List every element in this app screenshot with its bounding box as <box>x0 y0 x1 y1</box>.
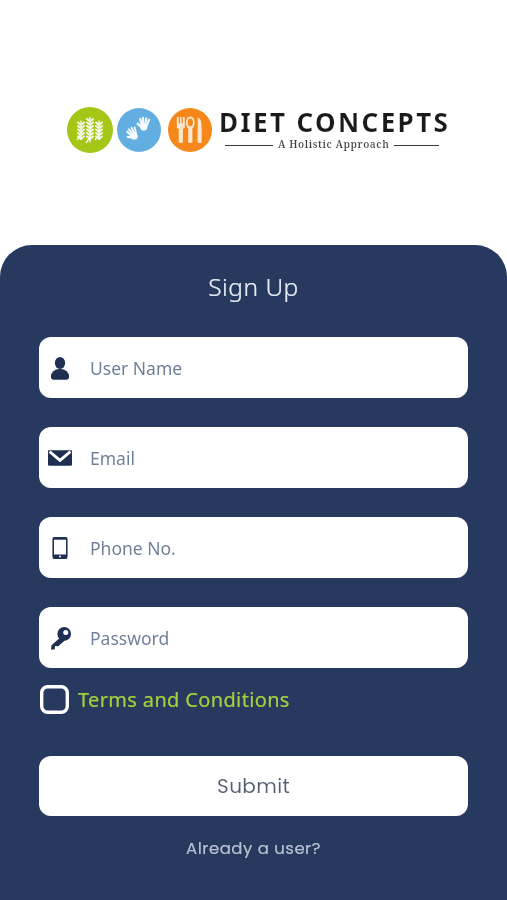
staticText: User Name <box>90 356 183 380</box>
staticText: Phone No. <box>90 536 176 560</box>
button[interactable]: Submit <box>39 756 468 816</box>
button[interactable]: User Name <box>39 337 468 398</box>
staticText: Password <box>90 626 170 650</box>
staticText: DIET CONCEPTS <box>219 104 451 139</box>
staticText: A Holistic Approach <box>278 137 390 151</box>
staticText: Email <box>90 446 135 470</box>
button[interactable]: Accept terms and conditions <box>40 685 69 714</box>
button[interactable]: Password <box>39 607 468 668</box>
button[interactable]: Phone No. <box>39 517 468 578</box>
staticText: Sign Up <box>0 270 507 303</box>
button[interactable]: Terms and Conditions <box>78 686 290 713</box>
staticText: Submit <box>217 772 291 800</box>
button[interactable]: Already a user? <box>0 837 507 860</box>
button[interactable]: Email <box>39 427 468 488</box>
